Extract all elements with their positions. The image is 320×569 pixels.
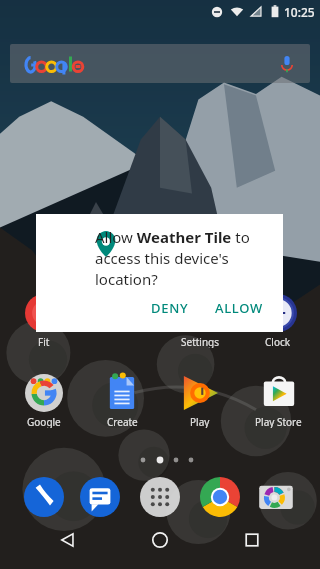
staticText: 10:25 — [284, 4, 315, 20]
button[interactable]: DENY — [143, 290, 197, 326]
button[interactable]: Settings — [164, 294, 236, 348]
staticText: ALLOW — [215, 299, 263, 317]
button[interactable]: Phone — [20, 473, 68, 521]
button[interactable]: Home — [142, 522, 178, 558]
button[interactable]: Camera — [252, 473, 300, 521]
staticText: Play Store — [255, 415, 302, 428]
button[interactable]: Apps — [136, 473, 184, 521]
button[interactable]: Messages — [76, 473, 124, 521]
button[interactable]: Create — [86, 374, 158, 428]
button[interactable]: Clock — [242, 294, 314, 348]
button[interactable]: Recent apps — [234, 522, 270, 558]
staticText: Google — [27, 415, 61, 428]
staticText: Clock — [265, 335, 291, 348]
button[interactable]: ALLOW — [207, 290, 271, 326]
button[interactable]: Play Store — [242, 374, 314, 428]
button[interactable]: Google — [8, 374, 80, 428]
button[interactable]: Voice search — [274, 51, 300, 77]
button[interactable]: Fit — [8, 294, 80, 348]
staticText: Create — [107, 415, 138, 428]
staticText: Settings — [181, 335, 220, 348]
button[interactable]: Play — [164, 374, 236, 428]
button[interactable]: Voice search — [10, 44, 310, 83]
button[interactable]: Back — [50, 522, 86, 558]
staticText: Allow Weather Tile to access this device… — [95, 227, 271, 290]
button[interactable]: App — [86, 294, 158, 348]
staticText: Fit — [38, 335, 50, 348]
button[interactable]: Chrome — [196, 473, 244, 521]
staticText: DENY — [151, 299, 189, 317]
staticText: Play — [190, 415, 210, 428]
